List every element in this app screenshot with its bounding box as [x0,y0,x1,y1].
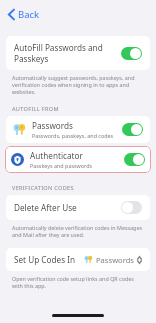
button[interactable]: Toggle off [121,201,142,214]
button[interactable]: Passwords [6,116,150,143]
staticText: AUTOFILL FROM [12,105,59,113]
staticText: Passwords [32,120,73,131]
button[interactable]: Toggle on [121,47,142,60]
button[interactable]: Toggle on [122,123,143,136]
staticText: Back [18,8,40,21]
button[interactable]: Back [5,5,43,24]
staticText: Authenticator [30,150,83,161]
button[interactable]: Set Up Codes In [6,248,150,271]
button[interactable]: Delete After Use [6,195,150,220]
button[interactable]: Authenticator [5,146,151,173]
button[interactable]: Toggle on [124,153,145,166]
staticText: Delete After Use [14,202,117,213]
staticText: Automatically suggest passwords, passkey… [12,74,146,95]
staticText: AutoFill Passwords and Passkeys [14,42,117,64]
staticText: Passwords, passkeys, and codes [32,132,114,139]
staticText: Passkeys and passwords [30,162,93,169]
staticText: Passwords [96,255,134,265]
staticText: VERIFICATION CODES [12,184,74,192]
button[interactable]: AutoFill Passwords and Passkeys [6,36,150,70]
staticText: Automatically delete verification codes … [12,224,146,238]
staticText: Set Up Codes In [14,254,84,265]
staticText: Open verification code setup links and Q… [12,275,146,289]
